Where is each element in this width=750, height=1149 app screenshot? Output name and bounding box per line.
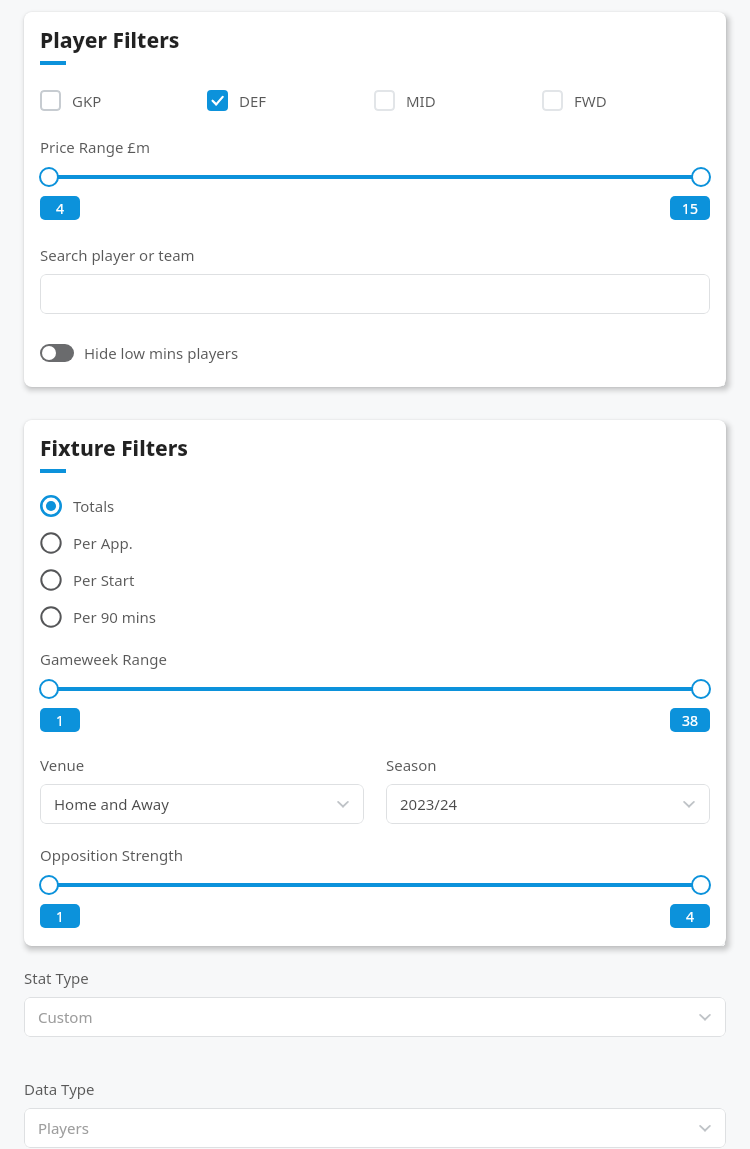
staticText: GKP	[72, 91, 102, 111]
staticText: Totals	[73, 496, 115, 516]
button[interactable]: Per App.	[40, 529, 133, 557]
button[interactable]: FWD	[542, 86, 710, 115]
other: Open dropdown	[698, 1121, 712, 1135]
button[interactable]: DEF	[207, 86, 374, 115]
staticText: DEF	[239, 91, 267, 111]
staticText: 15	[682, 199, 699, 218]
staticText: FWD	[574, 91, 607, 111]
staticText: Per 90 mins	[73, 607, 157, 627]
button[interactable]: Hide low mins players	[40, 339, 239, 367]
button[interactable]: Home and Away	[40, 784, 364, 824]
staticText: 38	[682, 711, 699, 730]
staticText: Opposition Strength	[40, 845, 184, 865]
button[interactable]: 2023/24	[386, 784, 710, 824]
button[interactable]: GKP	[40, 86, 207, 115]
staticText: MID	[406, 91, 436, 111]
staticText: Gameweek Range	[40, 649, 167, 669]
button[interactable]: Per Start	[40, 566, 135, 594]
staticText: Venue	[40, 755, 85, 775]
staticText: Per App.	[73, 533, 133, 553]
staticText: Home and Away	[54, 794, 169, 814]
other: Open dropdown	[682, 797, 696, 811]
button[interactable]: Custom	[24, 997, 726, 1037]
staticText: Fixture Filters	[40, 434, 189, 463]
staticText: 4	[686, 907, 695, 926]
staticText: Season	[386, 755, 437, 775]
staticText: Custom	[38, 1007, 93, 1027]
staticText: Stat Type	[24, 968, 89, 988]
staticText: Search player or team	[40, 245, 195, 265]
staticText: Per Start	[73, 570, 135, 590]
button[interactable]: MID	[374, 86, 542, 115]
other: Open dropdown	[698, 1010, 712, 1024]
staticText: Players	[38, 1118, 89, 1138]
staticText: Player Filters	[40, 26, 180, 55]
staticText: Data Type	[24, 1079, 95, 1099]
staticText: 1	[56, 907, 65, 926]
staticText: Hide low mins players	[84, 343, 239, 363]
staticText: 1	[56, 711, 65, 730]
staticText: Price Range £m	[40, 137, 150, 157]
other: Open dropdown	[336, 797, 350, 811]
button[interactable]: Players	[24, 1108, 726, 1148]
button[interactable]: Per 90 mins	[40, 603, 157, 631]
button[interactable]: Totals	[40, 492, 115, 520]
staticText: 2023/24	[400, 794, 458, 814]
staticText: 4	[56, 199, 65, 218]
button[interactable]	[40, 274, 710, 314]
